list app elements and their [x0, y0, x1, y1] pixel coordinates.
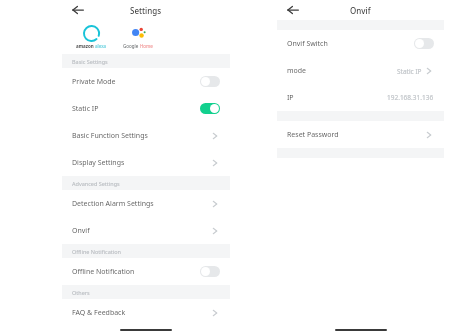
staticText: Others	[72, 289, 90, 296]
button[interactable]: Basic Function Settings	[62, 122, 230, 149]
button[interactable]: IP	[277, 84, 444, 111]
button[interactable]	[200, 103, 220, 114]
staticText: Onvif	[72, 226, 90, 236]
staticText: FAQ & Feedback	[72, 308, 126, 318]
staticText: alexa	[95, 43, 107, 49]
button[interactable]: Reset Password	[277, 121, 444, 148]
button[interactable]: FAQ & Feedback	[62, 299, 230, 326]
button[interactable]: Back	[70, 2, 86, 18]
staticText: mode	[287, 66, 307, 76]
staticText: Onvif Switch	[287, 39, 328, 49]
staticText: Detection Alarm Settings	[72, 199, 154, 209]
staticText: Google	[123, 43, 139, 49]
button[interactable]: Private Mode	[62, 68, 230, 95]
staticText: Basic Settings	[72, 58, 108, 65]
staticText: Basic Function Settings	[72, 131, 148, 141]
staticText: Static IP	[397, 67, 422, 76]
staticText: Private Mode	[72, 77, 116, 87]
staticText: 192.168.31.136	[387, 93, 434, 102]
button[interactable]: Google	[123, 25, 153, 49]
staticText: Static IP	[72, 104, 99, 114]
button[interactable]: amazon	[76, 25, 107, 49]
button[interactable]	[414, 38, 434, 49]
button[interactable]: Onvif	[62, 217, 230, 244]
button[interactable]	[200, 266, 220, 277]
button[interactable]: Detection Alarm Settings	[62, 190, 230, 217]
button[interactable]	[200, 76, 220, 87]
button[interactable]: Static IP	[62, 95, 230, 122]
button[interactable]: mode	[277, 57, 444, 84]
staticText: Offline Notification	[72, 267, 135, 277]
staticText: Home	[140, 43, 153, 49]
staticText: amazon	[76, 43, 94, 49]
staticText: Display Settings	[72, 158, 125, 168]
staticText: Reset Password	[287, 130, 339, 140]
button[interactable]: Offline Notification	[62, 258, 230, 285]
button[interactable]: Display Settings	[62, 149, 230, 176]
staticText: IP	[287, 93, 294, 103]
staticText: Advanced Settings	[72, 180, 120, 187]
button[interactable]: Onvif Switch	[277, 30, 444, 57]
button[interactable]: Back	[285, 2, 301, 18]
staticText: Onvif	[350, 5, 371, 16]
staticText: Offline Notification	[72, 248, 121, 255]
staticText: Settings	[130, 5, 162, 16]
